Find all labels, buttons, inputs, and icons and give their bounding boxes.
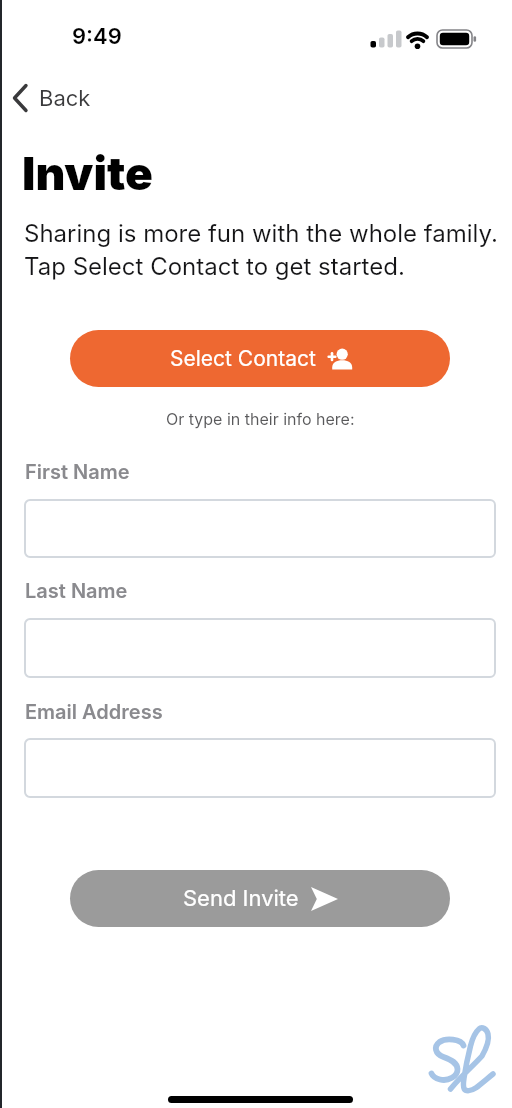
- staticText: First Name: [25, 460, 130, 484]
- staticText: Sharing is more fun with the whole famil…: [24, 219, 498, 280]
- staticText: Back: [39, 85, 91, 112]
- button[interactable]: [24, 738, 496, 798]
- button[interactable]: Back: [12, 84, 91, 112]
- staticText: Last Name: [25, 579, 128, 603]
- staticText: 9:49: [72, 23, 122, 50]
- staticText: Select Contact: [170, 346, 316, 371]
- button[interactable]: [24, 499, 496, 558]
- staticText: Or type in their info here:: [166, 409, 355, 428]
- staticText: Email Address: [25, 700, 163, 724]
- staticText: Send Invite: [183, 885, 299, 912]
- button[interactable]: Send Invite: [70, 870, 450, 927]
- staticText: Invite: [22, 145, 153, 201]
- button[interactable]: Select Contact: [70, 330, 450, 387]
- button[interactable]: [24, 618, 496, 678]
